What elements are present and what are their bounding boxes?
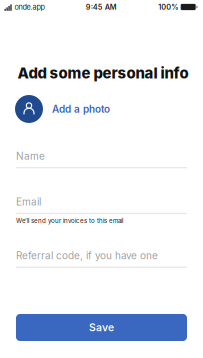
button[interactable]: Save [16,314,187,341]
staticText: Save [89,321,114,334]
staticText: Add a photo [52,103,110,115]
button[interactable]: Add a photo [0,95,203,123]
staticText: onde.app [14,3,44,11]
staticText: Add some personal info [17,64,188,82]
staticText: Name [16,150,45,162]
staticText: 100% [158,3,178,11]
staticText: Referral code, if you have one [16,249,158,262]
staticText: Email [16,196,41,208]
staticText: We'll send your invoices to this email [16,217,123,224]
staticText: 9:45 AM [86,3,117,11]
